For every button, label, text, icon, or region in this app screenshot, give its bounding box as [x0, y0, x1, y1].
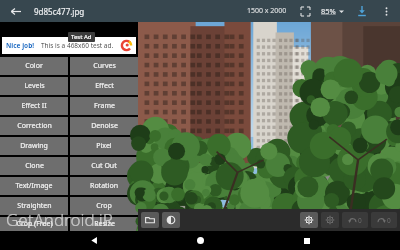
staticText: 0 — [358, 216, 362, 225]
staticText: Cut Out — [91, 161, 117, 171]
button[interactable]: Settings — [300, 212, 318, 228]
button[interactable]: Reset settings — [321, 212, 339, 228]
button[interactable]: Effect II — [0, 97, 68, 115]
button[interactable]: Open folder — [141, 212, 159, 228]
button[interactable]: Color — [0, 57, 68, 75]
staticText: Curves — [93, 61, 116, 71]
button[interactable]: Curves — [70, 57, 138, 75]
staticText: Test Ad — [71, 33, 92, 41]
staticText: 9d85c477.jpg — [34, 6, 85, 17]
staticText: Drawing — [20, 141, 48, 151]
button[interactable]: Clone — [0, 157, 68, 175]
staticText: Rotation — [90, 181, 118, 191]
staticText: 85% — [321, 6, 336, 16]
button[interactable]: Undo — [342, 212, 368, 228]
button[interactable]: Frame — [70, 97, 138, 115]
button[interactable]: Correction — [0, 117, 68, 135]
button[interactable]: Text/Image — [0, 177, 68, 195]
staticText: 0 — [387, 216, 391, 225]
button[interactable]: Back — [6, 2, 24, 20]
button[interactable]: Redo — [371, 212, 397, 228]
button[interactable]: Adjust contrast — [162, 212, 180, 228]
button[interactable]: Home — [187, 231, 213, 250]
staticText: Levels — [24, 81, 45, 91]
button[interactable]: Pixel — [70, 137, 138, 155]
staticText: Crop — [96, 201, 112, 211]
button[interactable]: Nice job! — [2, 37, 136, 54]
button[interactable]: Levels — [0, 77, 68, 95]
staticText: Correction — [17, 121, 52, 131]
button[interactable]: Denoise — [70, 117, 138, 135]
staticText: Color — [25, 61, 43, 71]
button[interactable]: Cut Out — [70, 157, 138, 175]
button[interactable]: Fit to screen — [297, 3, 313, 19]
staticText: Effect — [95, 81, 114, 91]
staticText: Effect II — [21, 101, 47, 111]
button[interactable]: Crop — [70, 197, 138, 215]
button[interactable]: Crop (Free) — [0, 217, 68, 231]
staticText: Resize — [94, 219, 115, 229]
staticText: Pixel — [96, 141, 112, 151]
staticText: Denoise — [91, 121, 118, 131]
staticText: GetAndroid.iR — [6, 208, 113, 231]
button[interactable]: Straighten — [0, 197, 68, 215]
button[interactable]: Effect — [70, 77, 138, 95]
staticText: 1500 x 2000 — [247, 6, 287, 16]
button[interactable]: Recent apps — [294, 231, 320, 250]
button[interactable]: Drawing — [0, 137, 68, 155]
button[interactable]: More options — [378, 3, 394, 19]
staticText: Frame — [94, 101, 115, 111]
button[interactable]: Back — [81, 231, 107, 250]
staticText: Nice job! — [6, 41, 35, 50]
staticText: Text/Image — [15, 181, 53, 191]
button[interactable]: Resize — [70, 217, 138, 231]
staticText: Straighten — [17, 201, 52, 211]
staticText: This is a 468x60 test ad. — [41, 41, 114, 50]
button[interactable]: Rotation — [70, 177, 138, 195]
staticText: Clone — [25, 161, 44, 171]
button[interactable]: 85% — [321, 6, 344, 16]
staticText: Crop (Free) — [16, 219, 53, 229]
button[interactable]: Download — [354, 3, 370, 19]
